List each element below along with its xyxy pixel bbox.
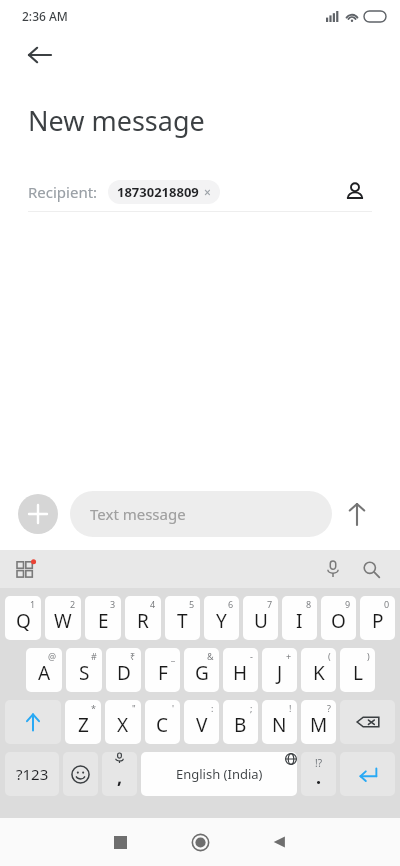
staticText: R (137, 608, 149, 634)
staticText: Y (216, 608, 227, 634)
staticText: K (313, 660, 325, 686)
staticText: 18730218809 (117, 183, 199, 201)
button[interactable]: J (262, 648, 297, 692)
button[interactable]: H (223, 648, 258, 692)
staticText: W (54, 608, 72, 634)
button[interactable]: Toolbar menu (12, 555, 40, 583)
button[interactable]: L (340, 648, 375, 692)
staticText: S (79, 660, 90, 686)
staticText: : (211, 702, 214, 714)
button[interactable]: I (282, 596, 317, 640)
button[interactable]: C (145, 700, 180, 744)
staticText: U (254, 608, 268, 634)
button[interactable]: Send (332, 489, 382, 539)
button[interactable]: X (105, 700, 141, 744)
button[interactable]: Z (65, 700, 101, 744)
staticText: V (196, 712, 208, 738)
staticText: 5 (189, 598, 195, 610)
staticText: P (372, 608, 384, 634)
button[interactable]: Enter (340, 752, 395, 796)
staticText: H (233, 660, 248, 686)
staticText: !? (315, 756, 323, 770)
staticText: ! (289, 702, 292, 714)
button[interactable]: K (301, 648, 336, 692)
button[interactable]: Y (204, 596, 239, 640)
staticText: 2 (70, 598, 76, 610)
button[interactable]: Add attachment (18, 494, 58, 534)
staticText: * (91, 702, 96, 714)
button[interactable]: E (85, 596, 121, 640)
staticText: D (117, 660, 131, 686)
staticText: 1 (30, 598, 36, 610)
staticText: 6 (228, 598, 234, 610)
staticText: N (272, 712, 287, 738)
button[interactable]: Back (240, 818, 320, 866)
button[interactable]: Period (301, 752, 336, 796)
staticText: - (250, 650, 253, 662)
staticText: 0 (384, 598, 390, 610)
staticText: @ (48, 650, 57, 662)
staticText: 3 (110, 598, 116, 610)
button[interactable]: B (223, 700, 258, 744)
staticText: O (331, 608, 346, 634)
staticText: ) (367, 650, 370, 662)
staticText: ? (327, 702, 331, 714)
button[interactable]: Shift (5, 700, 61, 744)
staticText: 7 (267, 598, 273, 610)
staticText: F (158, 660, 168, 686)
button[interactable]: N (262, 700, 297, 744)
staticText: A (38, 660, 51, 686)
staticText: " (132, 702, 136, 714)
button[interactable]: T (165, 596, 200, 640)
button[interactable]: Text message (70, 491, 332, 537)
staticText: X (117, 712, 129, 738)
staticText: Q (16, 608, 31, 634)
button[interactable]: M (301, 700, 336, 744)
staticText: , (117, 765, 123, 790)
button[interactable]: G (184, 648, 219, 692)
button[interactable]: Search (356, 554, 386, 584)
staticText: . (316, 765, 322, 790)
button[interactable]: Symbols (5, 752, 59, 796)
staticText: E (98, 608, 109, 634)
staticText: J (277, 660, 283, 686)
staticText: & (207, 650, 214, 662)
button[interactable]: A (26, 648, 62, 692)
button[interactable]: Recents (80, 818, 160, 866)
button[interactable]: Home (160, 818, 240, 866)
button[interactable]: W (45, 596, 81, 640)
staticText: ₹ (130, 650, 136, 662)
button[interactable]: Contacts (338, 175, 372, 209)
button[interactable]: U (243, 596, 278, 640)
staticText: + (286, 650, 292, 662)
button[interactable]: R (125, 596, 161, 640)
staticText: ( (328, 650, 331, 662)
staticText: Text message (90, 504, 186, 524)
button[interactable]: Backspace (340, 700, 395, 744)
staticText: _ (171, 650, 175, 662)
staticText: B (234, 712, 247, 738)
button[interactable]: V (184, 700, 219, 744)
staticText: 8 (306, 598, 312, 610)
staticText: Recipient: (28, 182, 98, 202)
staticText: I (296, 608, 303, 634)
staticText: L (353, 660, 363, 686)
button[interactable]: Space (141, 752, 297, 796)
staticText: English (India) (176, 765, 263, 783)
button[interactable]: P (360, 596, 395, 640)
staticText: New message (28, 102, 205, 139)
button[interactable]: Voice input (318, 554, 348, 584)
staticText: C (156, 712, 169, 738)
staticText: ; (250, 702, 253, 714)
staticText: # (91, 650, 97, 662)
button[interactable]: O (321, 596, 356, 640)
button[interactable]: Comma (102, 752, 137, 796)
button[interactable]: S (66, 648, 102, 692)
button[interactable]: F (145, 648, 180, 692)
button[interactable]: 18730218809 (108, 180, 220, 204)
staticText: 2:36 AM (22, 8, 68, 24)
button[interactable]: D (106, 648, 141, 692)
button[interactable]: Emoji (63, 752, 98, 796)
button[interactable]: Back (0, 32, 400, 78)
button[interactable]: Q (5, 596, 41, 640)
